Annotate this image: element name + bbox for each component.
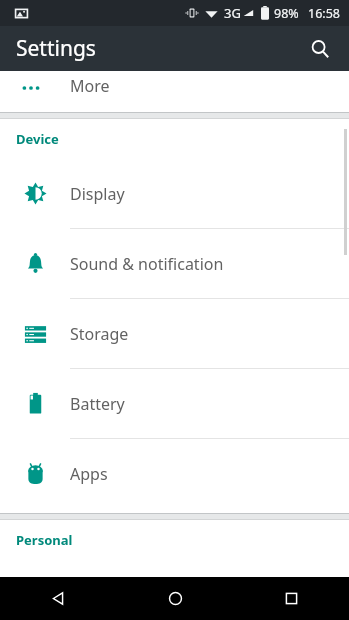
button[interactable]: Recent apps [233, 577, 349, 620]
staticText: 98% [274, 5, 299, 22]
button[interactable]: Storage [0, 299, 349, 368]
staticText: Personal [16, 531, 73, 549]
staticText: Display [70, 183, 125, 205]
staticText: Storage [70, 323, 129, 345]
staticText: More [70, 75, 110, 97]
staticText: 3G [224, 4, 241, 22]
button[interactable]: Home [117, 577, 233, 620]
staticText: Battery [70, 393, 125, 415]
staticText: 16:58 [308, 5, 340, 22]
staticText: Sound & notification [70, 253, 224, 275]
staticText: Settings [16, 34, 96, 63]
button[interactable]: Battery [0, 369, 349, 438]
button[interactable]: Apps [0, 439, 349, 508]
staticText: Apps [70, 463, 108, 485]
button[interactable]: Search [299, 28, 341, 70]
button[interactable]: Sound & notification [0, 229, 349, 298]
button[interactable]: Display [0, 159, 349, 228]
button[interactable]: Back [0, 577, 117, 620]
button[interactable]: More [0, 71, 349, 112]
staticText: Device [16, 130, 59, 148]
